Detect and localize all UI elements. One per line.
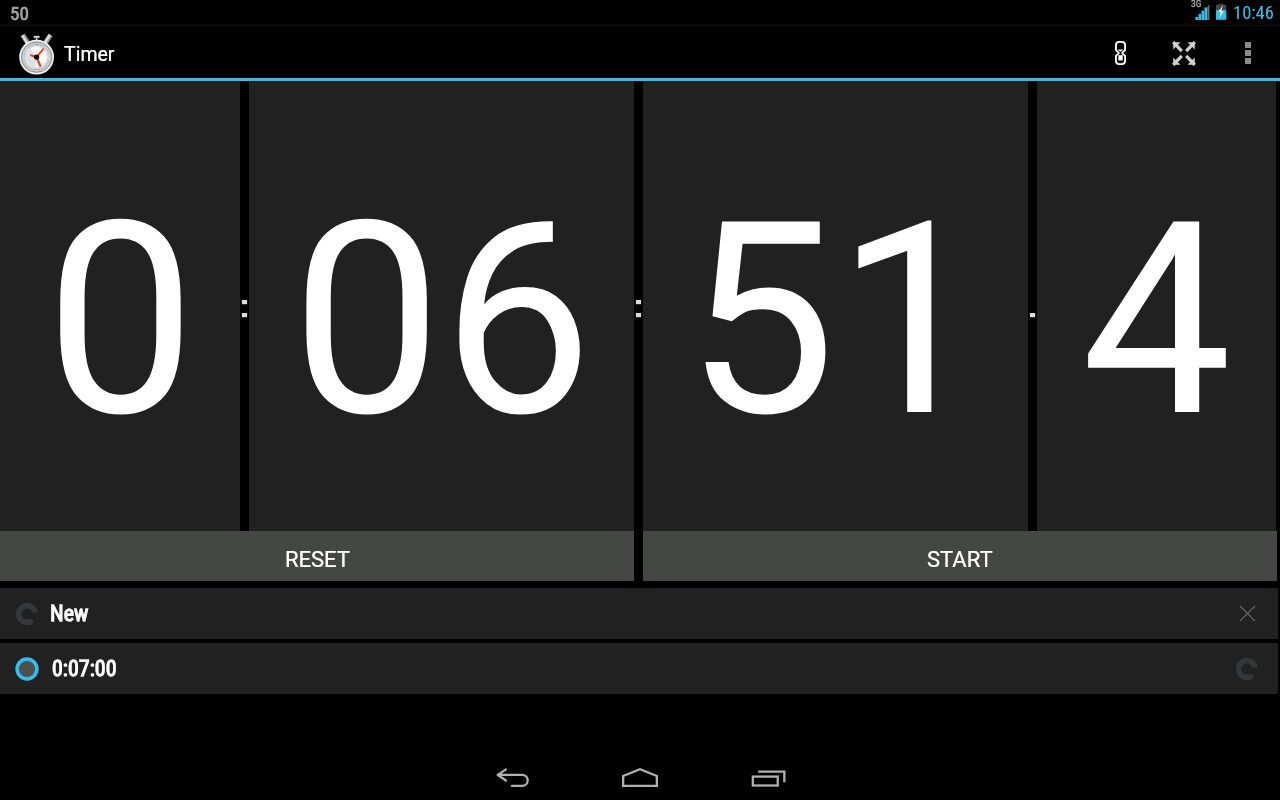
button[interactable]: Full screen [1152,26,1216,78]
button[interactable]: Recent apps [704,750,832,800]
staticText: 51 [685,163,987,477]
button[interactable]: Reset timer [1221,643,1273,694]
button[interactable]: Set timer [1092,26,1148,78]
button[interactable]: START [643,531,1277,581]
staticText: 0 [45,163,196,477]
staticText: 10:46 [1233,2,1274,24]
button[interactable]: 0:07:00 [0,643,1278,694]
button[interactable]: New [0,588,1278,639]
staticText: START [927,547,993,573]
button[interactable]: Home [576,750,704,800]
button[interactable]: RESET [0,531,634,581]
staticText: Timer [64,43,115,66]
button[interactable]: More options [1220,26,1276,78]
staticText: 4 [1081,163,1232,477]
button[interactable]: Delete timer [1221,588,1273,639]
staticText: 50 [10,2,29,24]
staticText: RESET [285,547,350,573]
staticText: 3G [1191,0,1202,9]
staticText: 06 [291,163,593,477]
staticText: 0:07:00 [52,656,117,682]
button[interactable]: Back [448,750,576,800]
staticText: New [50,601,89,627]
